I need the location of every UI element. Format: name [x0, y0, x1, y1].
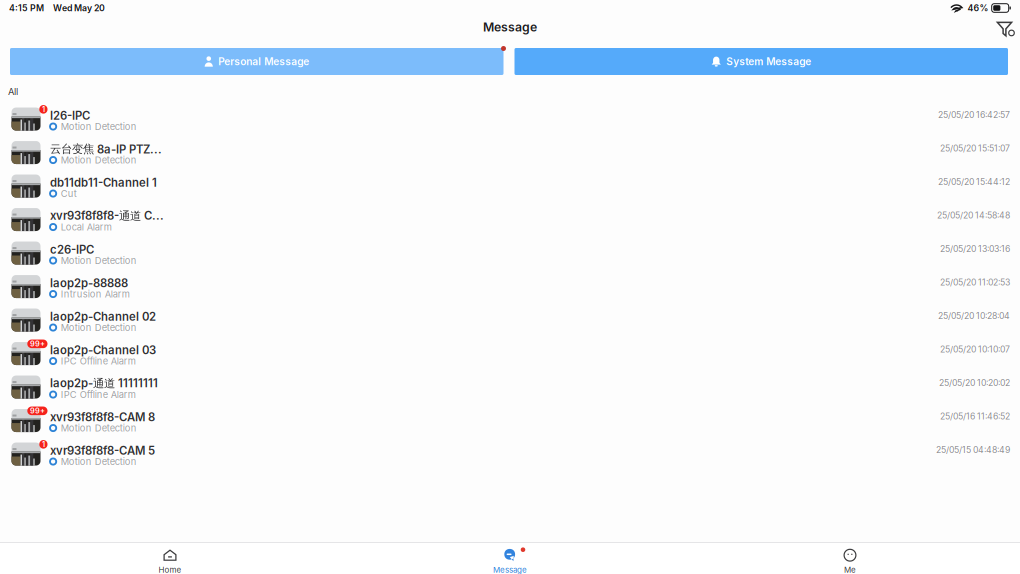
staticText: Motion Detection: [61, 121, 137, 132]
staticText: Motion Detection: [61, 255, 137, 266]
staticText: 4:15 PM: [9, 3, 44, 13]
staticText: Intrusion Alarm: [61, 288, 130, 300]
staticText: 25/05/20 13:03:16: [940, 243, 1010, 254]
staticText: 云台变焦 8a-IP PTZ...: [50, 142, 162, 156]
staticText: 46%: [967, 3, 988, 13]
staticText: 25/05/20 14:58:48: [937, 210, 1010, 220]
staticText: 99+: [30, 406, 45, 415]
staticText: Motion Detection: [61, 154, 137, 166]
staticText: 25/05/20 10:28:04: [938, 310, 1010, 321]
button[interactable]: System Message: [514, 48, 1008, 75]
staticText: db11db11-Channel 1: [50, 176, 157, 189]
staticText: 25/05/20 10:20:02: [939, 377, 1010, 388]
staticText: I26-IPC: [50, 109, 90, 122]
staticText: 25/05/15 04:48:49: [936, 444, 1010, 455]
button[interactable]: 1: [0, 438, 1020, 472]
staticText: laop2p-88888: [50, 276, 128, 290]
button[interactable]: Personal Message: [10, 48, 503, 75]
button[interactable]: laop2p-Channel 02: [0, 304, 1020, 338]
staticText: c26-IPC: [50, 243, 94, 256]
staticText: Motion Detection: [61, 322, 137, 333]
staticText: 25/05/20 16:42:57: [938, 109, 1010, 120]
staticText: Message: [483, 20, 537, 34]
button[interactable]: Me: [680, 543, 1020, 574]
staticText: Home: [158, 565, 181, 574]
staticText: 1: [42, 440, 45, 449]
button[interactable]: Home: [0, 543, 340, 574]
staticText: Personal Message: [218, 55, 309, 68]
staticText: 25/05/20 15:51:07: [940, 143, 1010, 153]
staticText: 25/05/20 15:44:12: [938, 176, 1010, 187]
staticText: 1: [42, 105, 45, 114]
button[interactable]: xvr93f8f8f8-通道 C...: [0, 204, 1020, 237]
button[interactable]: laop2p-通道 11111111: [0, 371, 1020, 405]
button[interactable]: db11db11-Channel 1: [0, 170, 1020, 204]
staticText: Local Alarm: [61, 221, 112, 233]
staticText: laop2p-Channel 02: [50, 310, 156, 323]
button[interactable]: Filter: [989, 16, 1020, 42]
staticText: xvr93f8f8f8-通道 C...: [50, 209, 164, 223]
staticText: 25/05/16 11:46:52: [940, 411, 1010, 421]
staticText: 25/05/20 10:10:07: [940, 344, 1010, 354]
staticText: Me: [844, 565, 856, 574]
staticText: IPC Offline Alarm: [61, 355, 136, 367]
staticText: xvr93f8f8f8-CAM 8: [50, 410, 155, 424]
staticText: laop2p-Channel 03: [50, 343, 156, 357]
button[interactable]: 1: [0, 103, 1020, 137]
button[interactable]: 云台变焦 8a-IP PTZ...: [0, 137, 1020, 170]
staticText: System Message: [726, 55, 811, 68]
button[interactable]: laop2p-88888: [0, 271, 1020, 304]
button[interactable]: 99+: [0, 405, 1020, 438]
button[interactable]: c26-IPC: [0, 237, 1020, 271]
staticText: IPC Offline Alarm: [61, 389, 136, 400]
staticText: Motion Detection: [61, 422, 137, 434]
staticText: 99+: [30, 339, 45, 348]
button[interactable]: Message: [340, 543, 680, 574]
staticText: Wed May 20: [53, 3, 105, 13]
staticText: Message: [493, 565, 527, 574]
staticText: laop2p-通道 11111111: [50, 376, 158, 391]
staticText: All: [8, 86, 18, 97]
staticText: 25/05/20 11:02:53: [940, 277, 1010, 287]
staticText: xvr93f8f8f8-CAM 5: [50, 444, 155, 457]
staticText: Cut: [61, 188, 77, 199]
staticText: Motion Detection: [61, 456, 137, 467]
button[interactable]: 99+: [0, 338, 1020, 371]
